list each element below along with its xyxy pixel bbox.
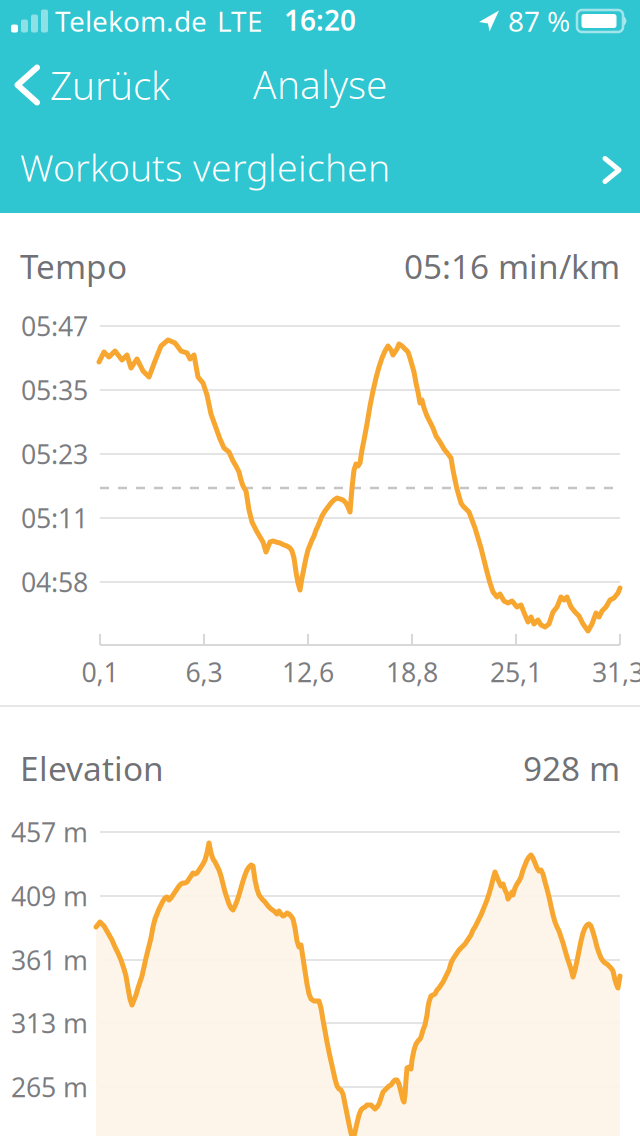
staticText: 25,1 bbox=[490, 654, 542, 690]
staticText: 313 m bbox=[11, 1005, 88, 1041]
staticText: 87 % bbox=[508, 2, 570, 40]
staticText: 04:58 bbox=[21, 564, 88, 600]
staticText: Tempo bbox=[20, 244, 127, 288]
staticText: Analyse bbox=[253, 58, 387, 110]
staticText: 05:23 bbox=[21, 436, 88, 472]
staticText: Elevation bbox=[20, 746, 164, 790]
staticText: 31,3 bbox=[592, 654, 640, 690]
staticText: 05:16 min/km bbox=[404, 244, 620, 288]
staticText: 265 m bbox=[11, 1069, 88, 1105]
staticText: 05:47 bbox=[21, 308, 88, 344]
staticText: Telekom.de bbox=[55, 2, 207, 40]
staticText: 16:20 bbox=[284, 1, 356, 39]
staticText: 457 m bbox=[11, 814, 88, 850]
staticText: Workouts vergleichen bbox=[20, 142, 390, 192]
staticText: 12,6 bbox=[282, 654, 334, 690]
staticText: 18,8 bbox=[386, 654, 438, 690]
staticText: LTE bbox=[217, 2, 263, 40]
staticText: 928 m bbox=[523, 746, 620, 790]
staticText: 05:11 bbox=[21, 500, 88, 536]
staticText: 6,3 bbox=[185, 654, 222, 690]
staticText: 0,1 bbox=[81, 654, 118, 690]
staticText: 361 m bbox=[11, 942, 88, 978]
staticText: 409 m bbox=[11, 878, 88, 914]
staticText: 05:35 bbox=[21, 372, 88, 408]
staticText: Zurück bbox=[50, 59, 170, 111]
